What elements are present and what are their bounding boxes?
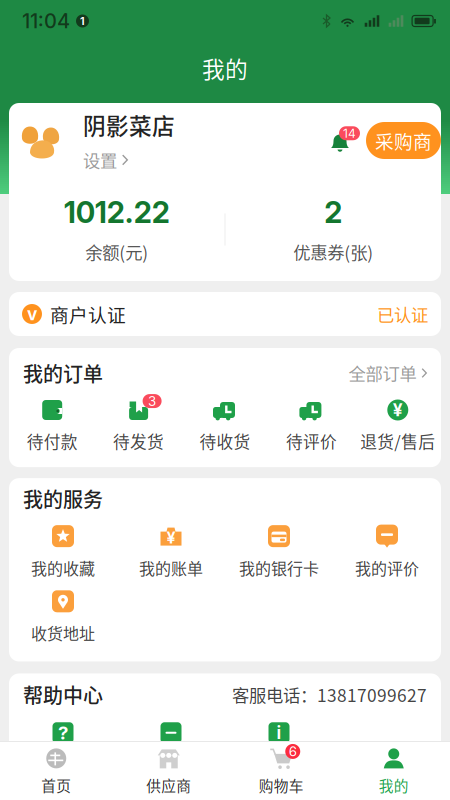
button[interactable]: ¥ <box>355 398 441 453</box>
staticText: 待付款 <box>27 429 78 453</box>
staticText: 采购商 <box>375 127 432 154</box>
staticText: i <box>276 722 281 743</box>
staticText: 我的收藏 <box>31 556 95 579</box>
staticText: 收货地址 <box>31 621 95 644</box>
staticText: 6 <box>289 743 297 759</box>
staticText: 全部订单 <box>348 360 416 386</box>
staticText: 我的订单 <box>23 358 103 387</box>
button[interactable]: 首页 <box>0 746 112 796</box>
staticText: 我的评价 <box>355 556 419 579</box>
staticText: 已认证 <box>377 301 428 327</box>
button[interactable]: Notifications <box>322 123 358 157</box>
staticText: 我的 <box>379 774 409 796</box>
staticText: 1 <box>80 14 85 27</box>
button[interactable]: ¥ <box>117 519 225 584</box>
staticText: 设置 <box>83 147 117 172</box>
button[interactable]: 我的 <box>337 746 450 796</box>
button[interactable]: About <box>225 722 333 743</box>
staticText: 1012.22 <box>64 195 170 230</box>
staticText: 我的 <box>202 52 248 84</box>
button[interactable]: 我的收藏 <box>9 519 117 584</box>
staticText: 客服电话：13817099627 <box>232 682 427 707</box>
staticText: ¥ <box>166 528 175 547</box>
button[interactable]: Feedback <box>117 722 225 743</box>
staticText: v <box>27 303 37 324</box>
staticText: 我的服务 <box>23 484 103 513</box>
button[interactable]: 设置 <box>83 147 128 172</box>
button[interactable]: 供应商 <box>112 746 225 796</box>
button[interactable]: FAQ <box>9 721 117 744</box>
staticText: ? <box>58 721 68 744</box>
button[interactable]: 2 <box>225 195 441 264</box>
staticText: 待发货 <box>113 429 164 453</box>
staticText: 11:04 <box>22 9 70 33</box>
staticText: 14 <box>343 126 356 140</box>
staticText: 待评价 <box>286 429 337 453</box>
button[interactable]: 3 <box>95 398 182 453</box>
button[interactable]: 全部订单 <box>348 360 427 386</box>
button[interactable]: 收货地址 <box>9 584 117 649</box>
staticText: ¥ <box>393 399 403 420</box>
staticText: 3 <box>148 393 156 409</box>
button[interactable]: 待付款 <box>9 398 95 453</box>
staticText: 我的银行卡 <box>239 556 319 579</box>
button[interactable]: 采购商 <box>366 122 441 159</box>
staticText: 供应商 <box>146 774 191 796</box>
button[interactable]: 1012.22 <box>9 195 224 264</box>
staticText: 优惠券(张) <box>293 239 373 264</box>
button[interactable]: 待收货 <box>182 398 268 453</box>
staticText: 首页 <box>41 774 71 796</box>
staticText: 余额(元) <box>85 239 148 264</box>
staticText: 商户认证 <box>50 300 126 327</box>
button[interactable]: 我的评价 <box>333 519 441 584</box>
button[interactable]: 待评价 <box>268 398 355 453</box>
staticText: 退货/售后 <box>360 429 435 453</box>
button[interactable]: 6 <box>225 746 337 796</box>
staticText: 我的账单 <box>139 556 203 579</box>
button[interactable]: v <box>9 292 441 336</box>
staticText: 阴影菜店 <box>83 108 175 141</box>
button[interactable]: 我的银行卡 <box>225 519 333 584</box>
staticText: 购物车 <box>259 774 304 796</box>
staticText: 帮助中心 <box>23 680 103 709</box>
staticText: 2 <box>324 195 342 230</box>
staticText: 待收货 <box>199 429 250 453</box>
